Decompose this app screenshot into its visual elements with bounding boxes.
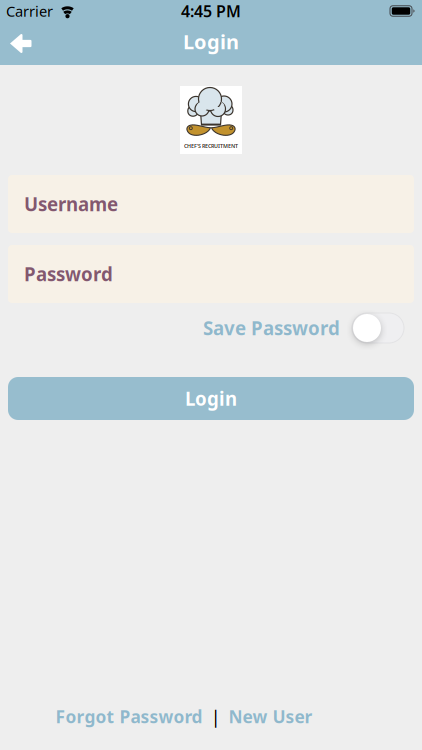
button[interactable]: Back xyxy=(0,21,32,66)
staticText: Carrier xyxy=(6,1,53,21)
staticText: Forgot Password xyxy=(55,705,202,728)
staticText: Save Password xyxy=(203,316,340,340)
staticText: Login xyxy=(183,28,239,55)
staticText: Password xyxy=(24,262,113,286)
button[interactable]: Username xyxy=(8,175,414,233)
button[interactable]: Login xyxy=(8,377,414,420)
button[interactable]: Save Password xyxy=(352,313,404,343)
staticText: | xyxy=(210,704,220,729)
button[interactable]: Password xyxy=(8,245,414,303)
staticText: 4:45 PM xyxy=(181,0,241,22)
staticText: Username xyxy=(24,192,118,216)
button[interactable]: New User xyxy=(228,705,312,728)
button[interactable]: Forgot Password xyxy=(55,705,202,728)
staticText: CHEF'S RECRUITMENT xyxy=(184,142,238,150)
staticText: New User xyxy=(228,705,312,728)
staticText: Login xyxy=(185,386,237,411)
